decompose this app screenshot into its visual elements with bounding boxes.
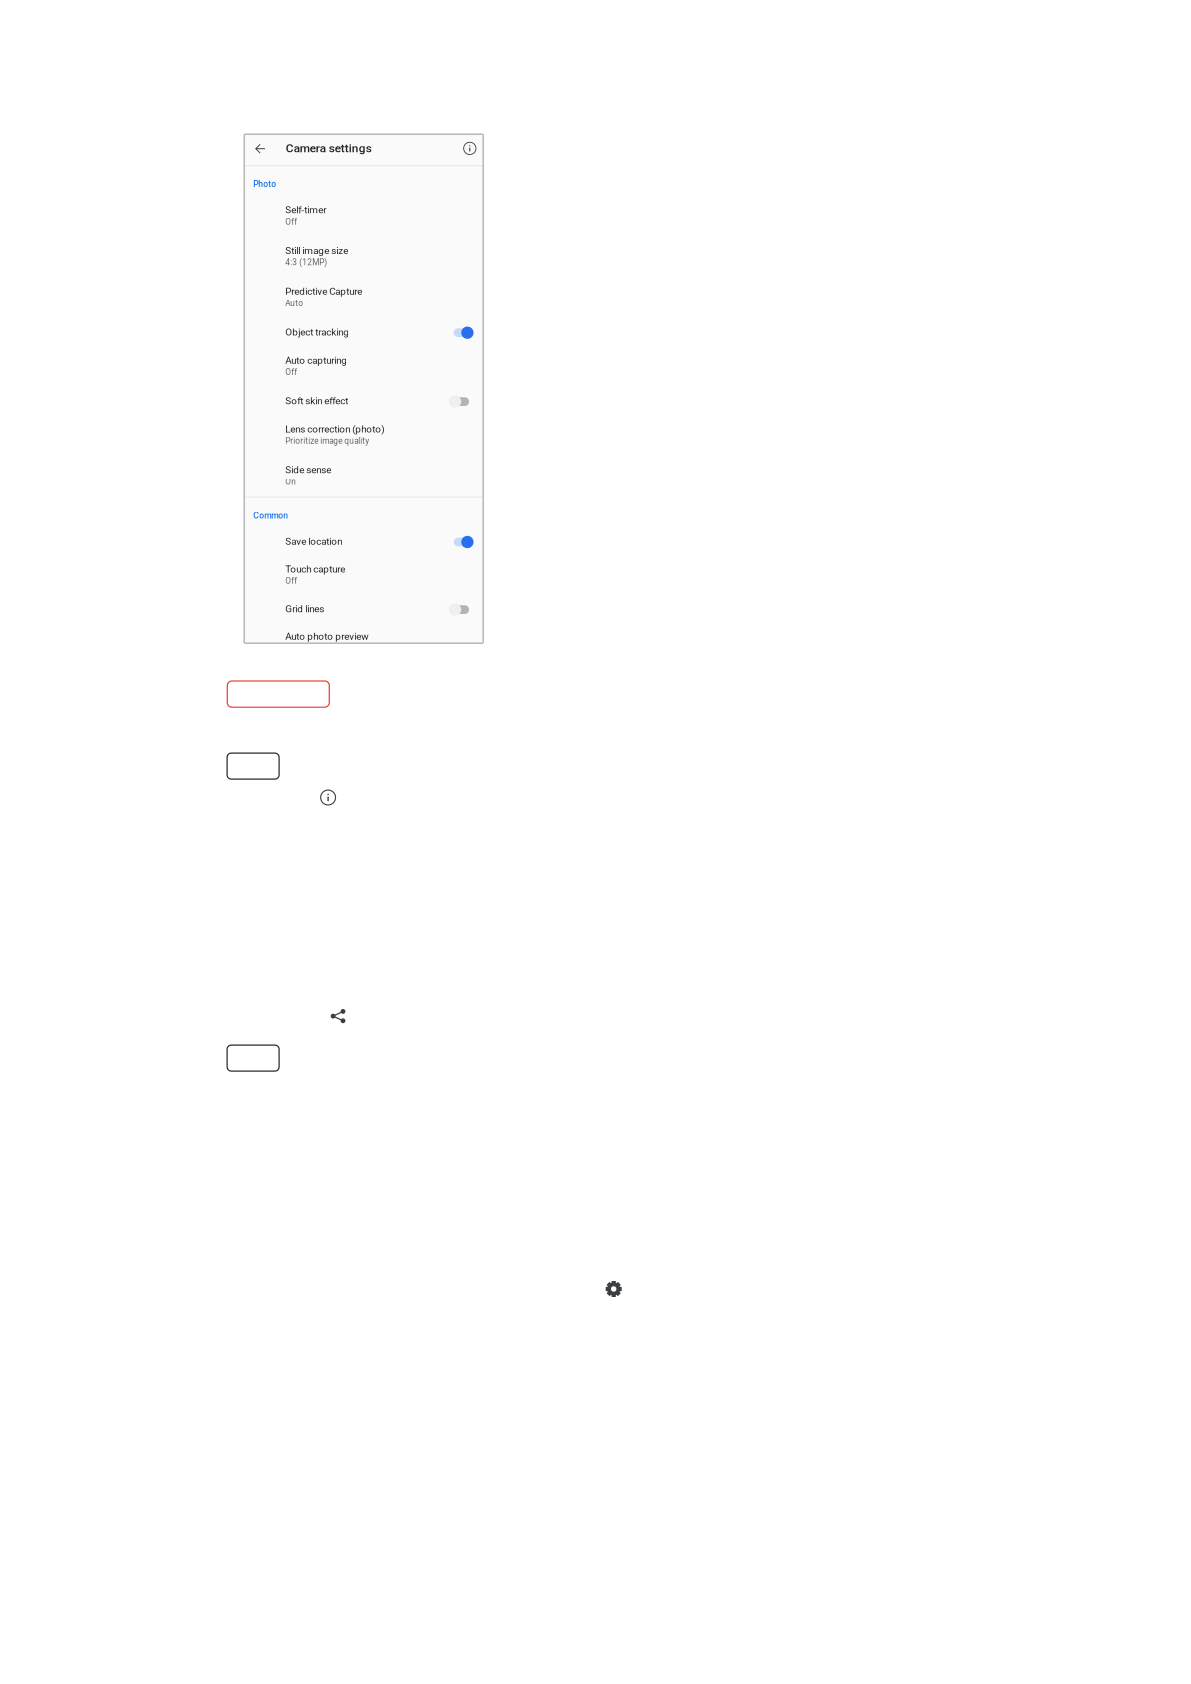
button[interactable]: Back (249, 138, 271, 160)
button[interactable]: Side sense (244, 464, 483, 497)
staticText: Auto (285, 298, 303, 308)
staticText: Photo (253, 179, 276, 189)
staticText: 4:3 (12MP) (285, 258, 327, 267)
staticText: Camera settings (286, 141, 372, 155)
staticText: Grid lines (285, 603, 324, 615)
button[interactable]: Save location (244, 536, 483, 563)
button[interactable]: Self-timer (244, 204, 483, 245)
staticText: Predictive Capture (285, 286, 362, 297)
staticText: Auto capturing (285, 354, 347, 366)
staticText: Lens correction (photo) (285, 423, 384, 435)
staticText: Side sense (285, 464, 331, 476)
button[interactable]: Share (328, 1006, 348, 1026)
button[interactable]: Option (227, 1045, 279, 1071)
staticText: Off (285, 217, 297, 227)
button[interactable]: Touch capture (244, 563, 483, 603)
button[interactable]: Lens correction (photo) (244, 423, 483, 464)
staticText: Auto photo preview (285, 631, 368, 642)
staticText: Common (253, 511, 288, 521)
button[interactable]: Auto photo preview (244, 631, 483, 671)
staticText: Save location (285, 536, 342, 547)
staticText: Soft skin effect (285, 395, 348, 407)
button[interactable]: Soft skin effect (244, 395, 483, 423)
staticText: Self-timer (285, 204, 326, 216)
staticText: Touch capture (285, 563, 345, 575)
button[interactable]: Still image size (244, 245, 483, 286)
staticText: Object tracking (285, 326, 349, 338)
button[interactable]: Info (460, 138, 480, 158)
button[interactable]: Settings (604, 1279, 624, 1299)
button[interactable]: Auto capturing (244, 354, 483, 395)
staticText: Off (285, 367, 297, 377)
staticText: On (285, 477, 296, 487)
button[interactable]: Option (227, 753, 279, 779)
staticText: Prioritize image quality (285, 436, 369, 446)
staticText: On (285, 643, 296, 653)
button[interactable]: Highlighted option (227, 681, 329, 707)
button[interactable]: Information (318, 787, 338, 807)
staticText: Still image size (285, 245, 348, 256)
button[interactable]: Grid lines (244, 603, 483, 631)
staticText: Off (285, 576, 297, 586)
button[interactable]: Object tracking (244, 326, 483, 354)
button[interactable]: Predictive Capture (244, 286, 483, 326)
